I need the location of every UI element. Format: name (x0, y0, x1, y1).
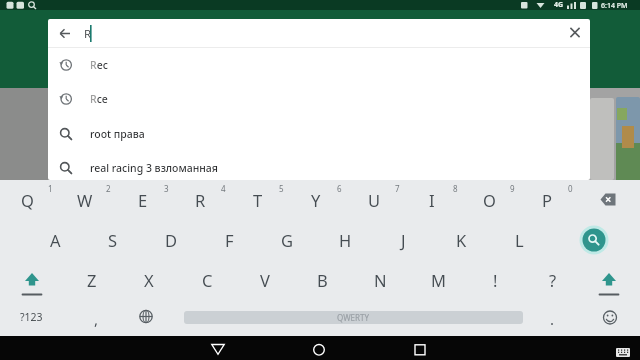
staticText: ?123 (20, 310, 43, 324)
staticText: 0 (568, 183, 573, 194)
staticText: K (456, 229, 467, 251)
button[interactable]: root права (48, 117, 590, 151)
staticText: G (281, 229, 294, 251)
button[interactable] (375, 220, 431, 259)
staticText: F (225, 229, 234, 251)
staticText: QWERTY (337, 312, 370, 323)
staticText: S (108, 229, 118, 251)
button[interactable] (52, 19, 78, 48)
staticText: . (550, 309, 555, 329)
staticText: C (202, 269, 213, 291)
staticText: ! (493, 269, 498, 291)
button[interactable] (613, 346, 639, 360)
staticText: 4 (221, 183, 226, 194)
button[interactable] (560, 19, 590, 48)
staticText: X (144, 269, 154, 291)
staticText: , (94, 309, 99, 329)
staticText: E (138, 189, 148, 211)
button[interactable] (179, 260, 235, 299)
staticText: 6 (337, 183, 342, 194)
button[interactable] (0, 180, 55, 219)
staticText: R (195, 189, 206, 211)
button[interactable] (85, 220, 141, 259)
staticText: O (483, 189, 496, 211)
button[interactable] (115, 180, 171, 219)
staticText: A (50, 229, 61, 251)
button[interactable] (121, 260, 177, 299)
button[interactable]: QWERTY (184, 311, 523, 324)
staticText: real racing 3 взломанная (90, 161, 218, 175)
staticText: 1 (48, 183, 53, 194)
staticText: 9 (510, 183, 515, 194)
staticText: ? (549, 269, 557, 291)
button[interactable] (584, 297, 636, 336)
button[interactable] (585, 180, 640, 219)
staticText: D (165, 229, 178, 251)
button[interactable] (294, 260, 350, 299)
button[interactable] (525, 260, 581, 299)
staticText: U (368, 189, 381, 211)
button[interactable] (143, 220, 199, 259)
button[interactable] (582, 260, 636, 299)
button[interactable] (467, 260, 523, 299)
staticText: J (401, 229, 406, 251)
button[interactable] (57, 180, 113, 219)
button[interactable] (288, 180, 344, 219)
staticText: 4G (554, 0, 564, 10)
staticText: 8 (453, 183, 458, 194)
staticText: M (431, 269, 446, 291)
button[interactable] (461, 180, 517, 219)
button[interactable] (237, 260, 293, 299)
button[interactable] (64, 260, 120, 299)
staticText: 7 (395, 183, 400, 194)
button[interactable] (172, 180, 228, 219)
staticText: B (317, 269, 328, 291)
staticText: Y (311, 189, 321, 211)
staticText: T (253, 189, 263, 211)
staticText: I (429, 189, 435, 211)
button[interactable] (230, 180, 286, 219)
staticText: L (515, 229, 524, 251)
staticText: H (339, 229, 352, 251)
button[interactable] (491, 220, 547, 259)
button[interactable] (27, 220, 83, 259)
staticText: 3 (164, 183, 169, 194)
staticText: 5 (279, 183, 284, 194)
button[interactable] (301, 336, 337, 360)
button[interactable] (120, 297, 172, 336)
staticText: 6:14 PM (601, 1, 628, 11)
staticText: Rce (90, 92, 108, 106)
button[interactable] (259, 220, 315, 259)
button[interactable] (433, 220, 489, 259)
staticText: Z (87, 269, 97, 291)
button[interactable] (352, 260, 408, 299)
button[interactable] (404, 180, 460, 219)
staticText: W (77, 189, 93, 211)
staticText: Rec (90, 58, 108, 72)
staticText: V (260, 269, 270, 291)
button[interactable]: Rce (48, 82, 590, 116)
staticText: Q (21, 189, 34, 211)
staticText: P (542, 189, 552, 211)
button[interactable] (4, 297, 58, 336)
button[interactable]: Rec (48, 48, 590, 82)
button[interactable] (519, 180, 575, 219)
button[interactable] (578, 224, 610, 256)
staticText: root права (90, 127, 145, 141)
button[interactable] (346, 180, 402, 219)
button[interactable] (317, 220, 373, 259)
button[interactable] (410, 260, 466, 299)
button[interactable]: real racing 3 взломанная (48, 151, 590, 180)
button[interactable] (5, 260, 59, 299)
staticText: N (374, 269, 387, 291)
staticText: 2 (106, 183, 111, 194)
button[interactable] (402, 336, 438, 360)
button[interactable] (201, 220, 257, 259)
staticText: R (84, 26, 92, 42)
button[interactable] (200, 336, 236, 360)
